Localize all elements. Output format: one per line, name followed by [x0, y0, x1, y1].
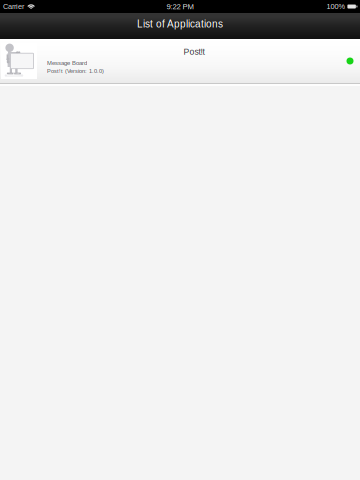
staticText: 9:22 PM [166, 2, 193, 11]
staticText: Carrier [3, 2, 24, 11]
button[interactable]: Post!t [0, 39, 360, 83]
staticText: 100% [326, 2, 345, 11]
staticText: Post!t [183, 47, 204, 57]
staticText: Post!t (Version: 1.0.0) [47, 68, 104, 74]
staticText: List of Applications [137, 18, 223, 30]
staticText: Message Board [47, 60, 87, 66]
